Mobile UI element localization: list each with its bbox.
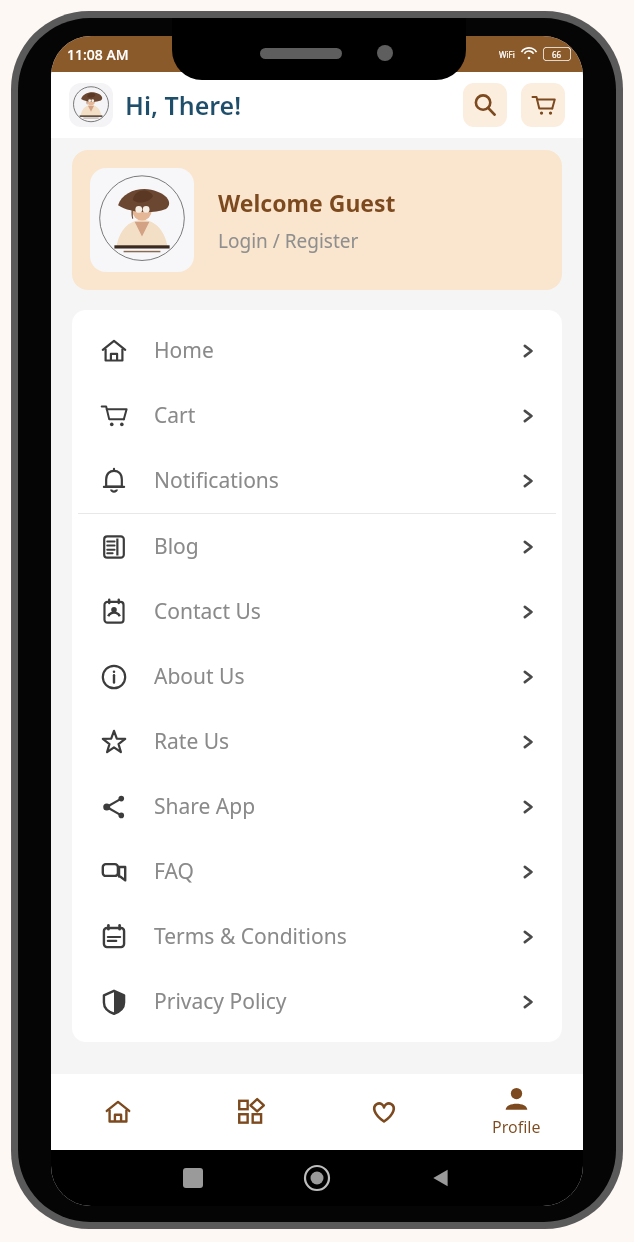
button[interactable]: Blog [72,514,562,579]
staticText: Welcome Guest [218,187,396,218]
button[interactable]: About Us [72,644,562,709]
button[interactable]: Profile [450,1074,583,1150]
button[interactable]: Welcome Guest [72,150,562,290]
button[interactable]: Search [463,83,507,127]
button[interactable]: Privacy Policy [72,969,562,1034]
button[interactable]: Terms & Conditions [72,904,562,969]
button[interactable]: Rate Us [72,709,562,774]
staticText: Home [154,336,214,365]
button[interactable]: Home [51,1074,184,1150]
staticText: Profile [492,1116,541,1138]
staticText: Contact Us [154,597,261,626]
staticText: FAQ [154,857,194,886]
staticText: Blog [154,532,199,561]
staticText: WiFi [499,49,515,60]
button[interactable]: Categories [184,1074,317,1150]
button[interactable]: Contact Us [72,579,562,644]
staticText: Login / Register [218,228,359,254]
staticText: Hi, There! [125,88,242,122]
staticText: Privacy Policy [154,987,287,1016]
button[interactable]: FAQ [72,839,562,904]
staticText: Terms & Conditions [154,922,347,951]
staticText: 66 [552,49,562,60]
button[interactable]: Notifications [72,448,562,513]
button[interactable]: Cart [72,383,562,448]
button[interactable]: Share App [72,774,562,839]
button[interactable]: Wishlist [317,1074,450,1150]
staticText: Cart [154,401,196,430]
button[interactable]: Home [72,318,562,383]
staticText: About Us [154,662,245,691]
button[interactable]: Cart [521,83,565,127]
staticText: Share App [154,792,256,821]
staticText: Notifications [154,466,279,495]
staticText: 11:08 AM [67,45,129,64]
staticText: Rate Us [154,727,230,756]
